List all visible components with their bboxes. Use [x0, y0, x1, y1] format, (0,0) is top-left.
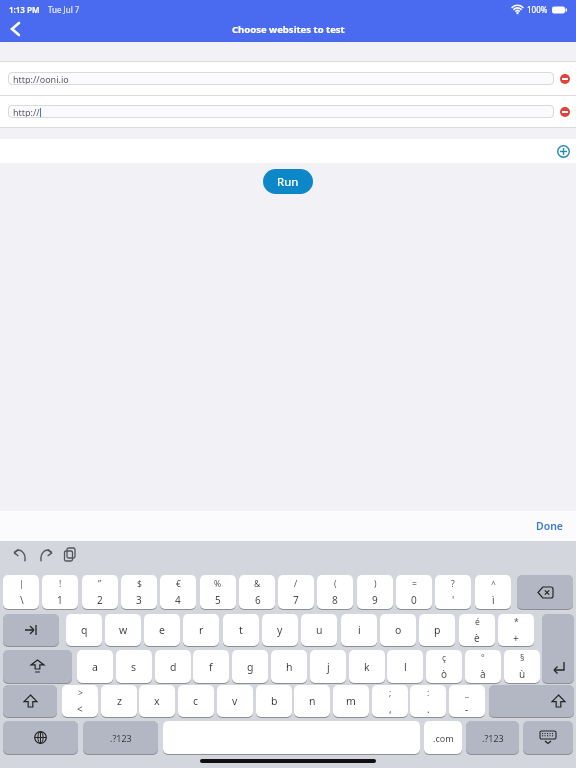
button[interactable]: l — [387, 650, 423, 683]
staticText: ^ — [491, 578, 496, 590]
button[interactable]: é — [459, 614, 495, 646]
button[interactable]: ? — [435, 575, 471, 609]
staticText: \ — [20, 593, 24, 607]
button[interactable] — [39, 549, 53, 562]
button[interactable]: q — [66, 614, 102, 646]
button[interactable] — [560, 74, 570, 84]
button[interactable]: x — [139, 685, 175, 717]
staticText: p — [434, 623, 441, 637]
button[interactable]: Done — [536, 519, 564, 533]
staticText: § — [520, 652, 525, 664]
button[interactable]: v — [217, 685, 253, 717]
button[interactable]: $ — [121, 575, 157, 609]
button[interactable] — [3, 721, 78, 754]
button[interactable] — [489, 685, 574, 717]
button[interactable]: h — [271, 650, 307, 683]
button[interactable]: a — [77, 650, 113, 683]
button[interactable]: y — [262, 614, 298, 646]
staticText: 6 — [255, 593, 261, 607]
button[interactable]: | — [3, 575, 39, 609]
button[interactable]: b — [256, 685, 292, 717]
button[interactable]: j — [310, 650, 346, 683]
staticText: à — [480, 667, 486, 681]
staticText: t — [239, 623, 243, 637]
button[interactable] — [3, 685, 57, 717]
button[interactable]: p — [419, 614, 455, 646]
button[interactable] — [13, 549, 27, 562]
button[interactable] — [3, 614, 59, 646]
button[interactable]: e — [144, 614, 180, 646]
button[interactable]: t — [223, 614, 259, 646]
button[interactable]: ° — [465, 650, 501, 683]
button[interactable] — [517, 575, 573, 609]
button[interactable]: d — [155, 650, 191, 683]
staticText: * — [514, 616, 519, 628]
button[interactable]: Run — [263, 169, 313, 194]
button[interactable]: § — [504, 650, 540, 683]
staticText: ' — [452, 593, 455, 607]
button[interactable] — [523, 721, 573, 754]
staticText: d — [170, 660, 177, 674]
button[interactable]: z — [101, 685, 137, 717]
button[interactable]: ^ — [475, 575, 511, 609]
button[interactable]: w — [105, 614, 141, 646]
button[interactable] — [11, 22, 20, 36]
button[interactable] — [557, 145, 570, 158]
button[interactable]: ç — [426, 650, 462, 683]
button[interactable]: ) — [357, 575, 393, 609]
staticText: 9 — [372, 593, 378, 607]
staticText: - — [465, 702, 469, 716]
staticText: 1 — [57, 593, 63, 607]
button[interactable]: g — [232, 650, 268, 683]
button[interactable]: n — [294, 685, 330, 717]
staticText: > — [78, 687, 83, 699]
button[interactable]: > — [62, 685, 98, 717]
staticText: a — [92, 660, 98, 674]
button[interactable]: ! — [42, 575, 78, 609]
staticText: q — [81, 623, 88, 637]
button[interactable]: m — [333, 685, 369, 717]
staticText: 4 — [175, 593, 181, 607]
button[interactable]: c — [178, 685, 214, 717]
button[interactable]: http:// — [8, 105, 554, 118]
staticText: c — [193, 694, 199, 708]
staticText: http:// — [13, 106, 40, 118]
button[interactable]: € — [160, 575, 196, 609]
button[interactable]: .?123 — [466, 721, 519, 754]
button[interactable] — [542, 614, 574, 683]
staticText: b — [271, 694, 278, 708]
button[interactable]: & — [239, 575, 275, 609]
button[interactable]: r — [183, 614, 219, 646]
button[interactable]: % — [200, 575, 236, 609]
staticText: $ — [137, 578, 142, 590]
button[interactable] — [3, 650, 72, 683]
button[interactable]: .com — [424, 721, 462, 754]
button[interactable]: * — [498, 614, 534, 646]
button[interactable]: : — [410, 685, 446, 717]
staticText: s — [131, 660, 137, 674]
button[interactable]: .?123 — [83, 721, 158, 754]
button[interactable]: ; — [372, 685, 408, 717]
staticText: u — [316, 623, 323, 637]
button[interactable]: / — [278, 575, 314, 609]
button[interactable]: f — [193, 650, 229, 683]
button[interactable]: k — [349, 650, 385, 683]
button[interactable]: ( — [317, 575, 353, 609]
button[interactable]: _ — [449, 685, 485, 717]
button[interactable]: s — [116, 650, 152, 683]
button[interactable]: i — [341, 614, 377, 646]
button[interactable]: http://ooni.io — [8, 72, 554, 85]
button[interactable]: = — [396, 575, 432, 609]
button[interactable] — [163, 721, 420, 754]
staticText: ? — [451, 578, 455, 590]
button[interactable] — [64, 548, 76, 562]
button[interactable] — [560, 107, 570, 117]
staticText: ! — [59, 578, 62, 590]
staticText: o — [395, 623, 402, 637]
staticText: v — [232, 694, 238, 708]
staticText: Tue Jul 7 — [48, 4, 80, 15]
button[interactable]: u — [301, 614, 337, 646]
button[interactable]: ” — [82, 575, 118, 609]
staticText: ( — [334, 578, 337, 590]
button[interactable]: o — [380, 614, 416, 646]
